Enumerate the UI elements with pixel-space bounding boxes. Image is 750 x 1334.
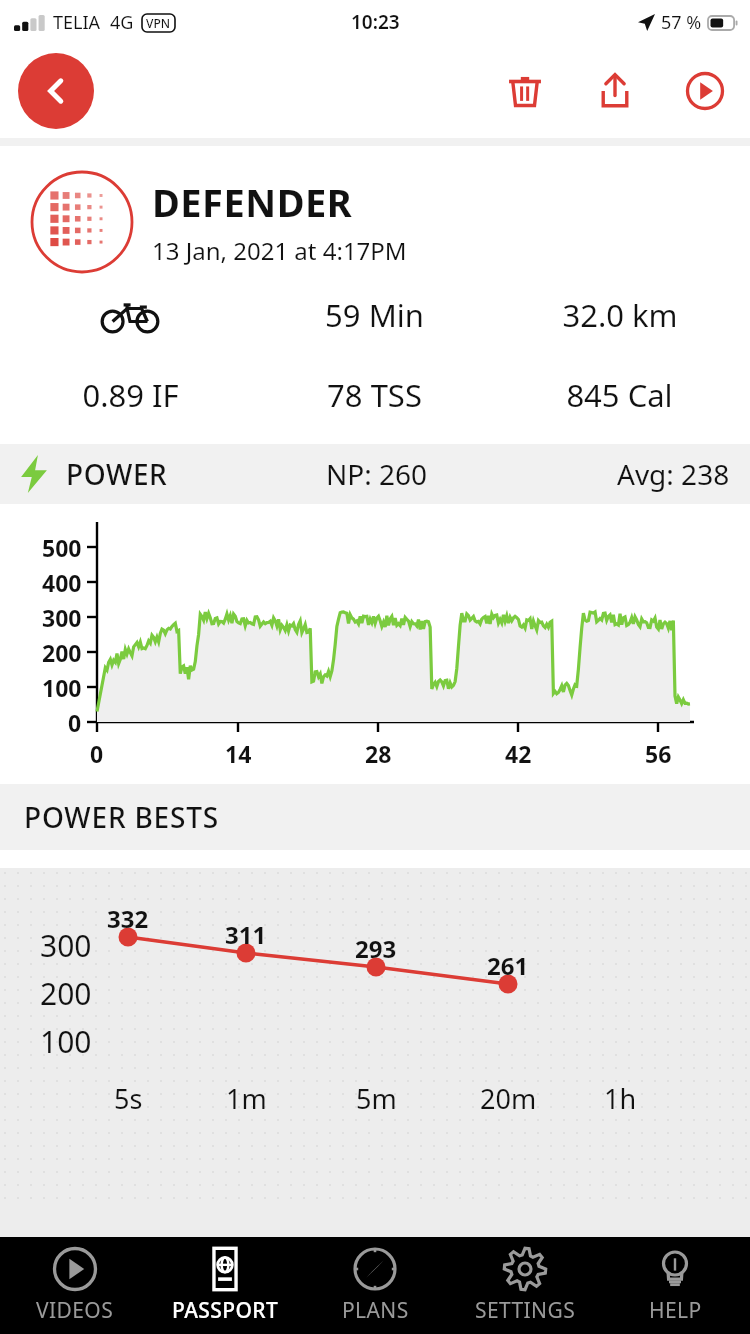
staticText: 300 [40,925,92,966]
staticText: 200 [40,973,92,1014]
button[interactable]: HELP [600,1237,750,1334]
staticText: 300 [42,602,82,633]
staticText: DEFENDER [152,176,353,228]
staticText: PLANS [342,1296,409,1325]
staticText: SETTINGS [475,1296,576,1325]
staticText: PASSPORT [172,1296,279,1325]
staticText: VPN [146,15,171,31]
button[interactable]: Back [18,53,94,129]
button[interactable]: Play workout [680,66,730,116]
staticText: 4G [110,10,134,35]
staticText: 845 Cal [566,374,673,416]
staticText: 5s [114,1080,143,1117]
staticText: 500 [42,532,82,563]
staticText: 100 [42,672,82,703]
staticText: 13 Jan, 2021 at 4:17PM [152,234,407,267]
staticText: 20m [480,1080,537,1117]
staticText: 332 [107,902,149,935]
staticText: 14 [225,738,252,769]
staticText: 0 [90,738,104,769]
staticText: 0 [68,707,82,738]
staticText: 56 [645,738,672,769]
staticText: Avg: 238 [617,455,730,493]
staticText: 59 Min [325,294,424,336]
staticText: 5m [356,1080,397,1117]
staticText: 32.0 km [562,294,678,336]
staticText: 100 [40,1021,92,1062]
staticText: 311 [225,918,267,951]
button[interactable]: SETTINGS [450,1237,600,1334]
staticText: 200 [42,637,82,668]
staticText: 1h [604,1080,637,1117]
button[interactable]: Delete [500,66,550,116]
staticText: 261 [487,949,529,982]
staticText: 10:23 [351,9,400,35]
button[interactable]: PLANS [300,1237,450,1334]
button[interactable]: VIDEOS [0,1237,150,1334]
staticText: 0.89 IF [82,374,179,416]
staticText: POWER [66,455,168,493]
staticText: 400 [42,567,82,598]
button[interactable]: PASSPORT [150,1237,300,1334]
staticText: HELP [649,1296,702,1325]
staticText: 1m [226,1080,267,1117]
staticText: TELIA [53,10,101,35]
button[interactable]: Share [590,66,640,116]
staticText: NP: 260 [326,455,428,493]
staticText: 57 % [661,10,702,35]
staticText: 293 [355,932,397,965]
staticText: 28 [365,738,392,769]
staticText: 78 TSS [327,374,422,416]
staticText: POWER BESTS [24,798,219,836]
staticText: 42 [505,738,532,769]
staticText: VIDEOS [36,1296,114,1325]
